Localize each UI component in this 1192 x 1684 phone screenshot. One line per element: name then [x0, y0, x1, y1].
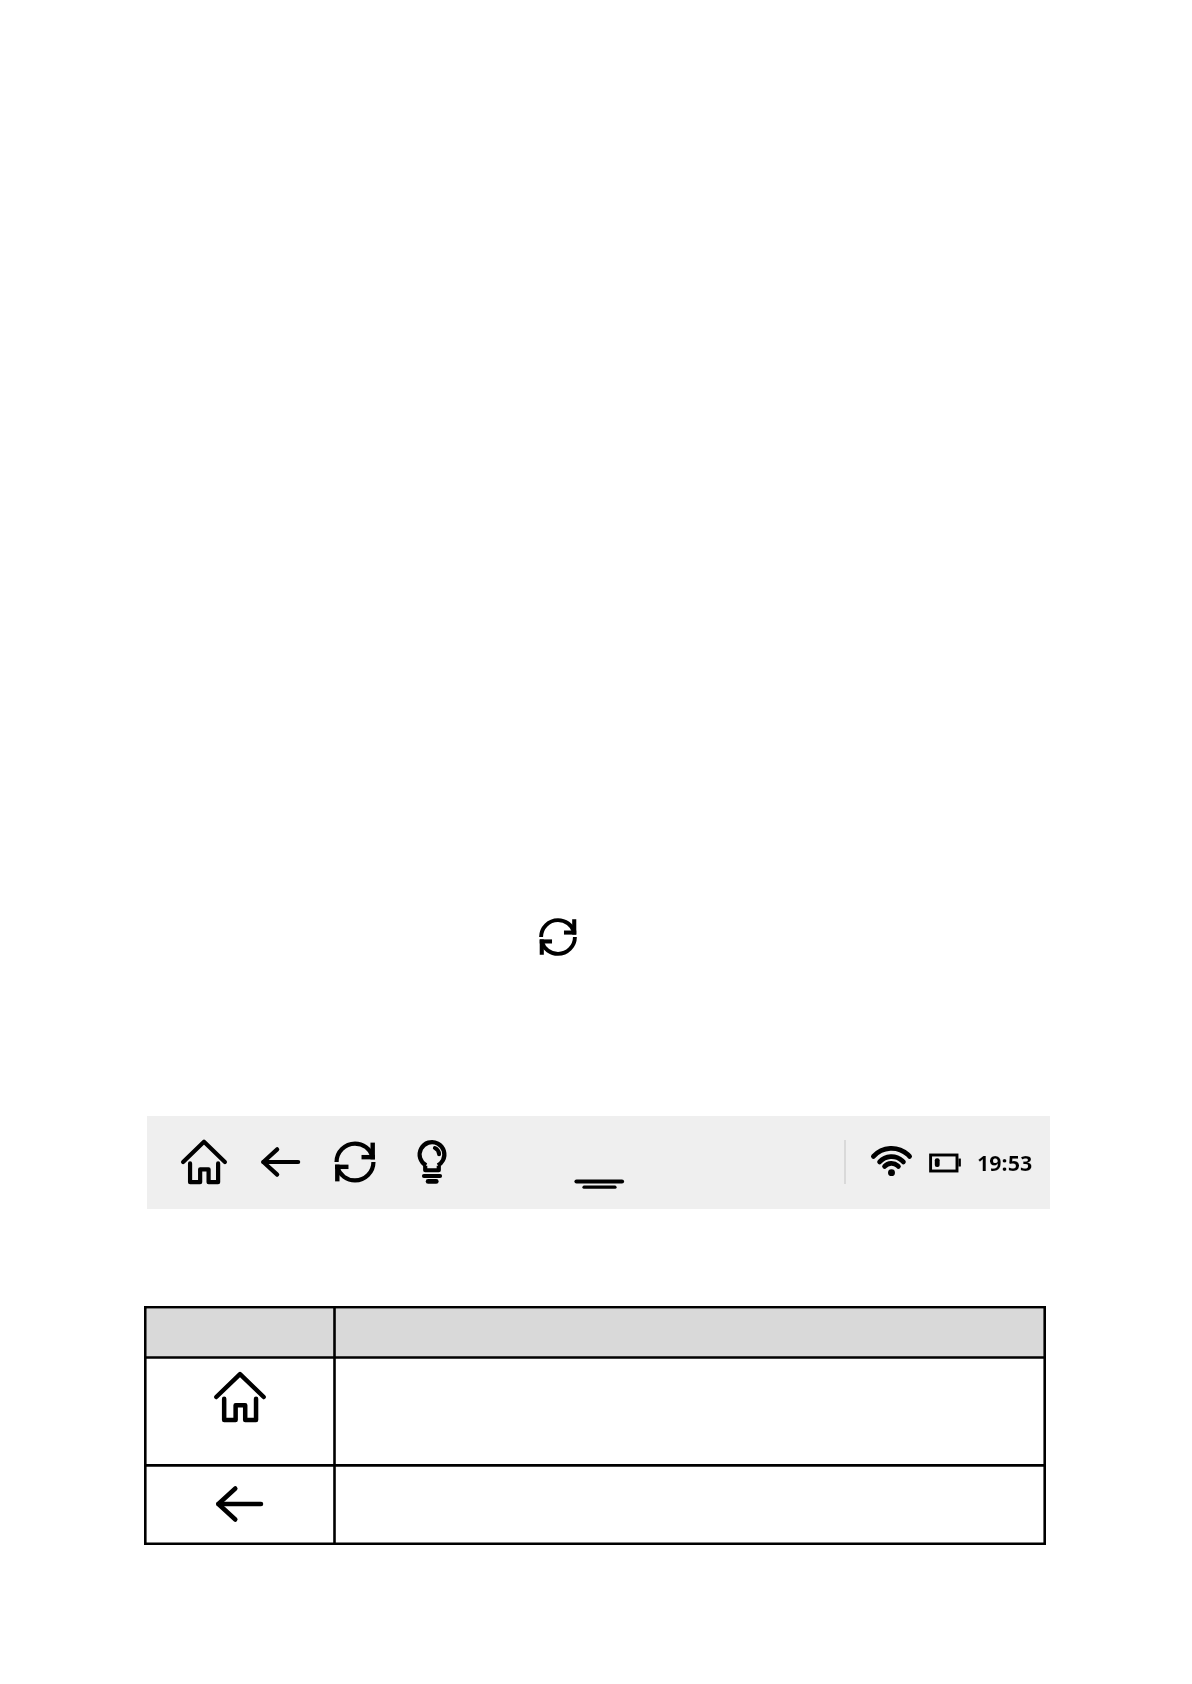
button[interactable]: Tips — [404, 1134, 460, 1190]
button[interactable]: Home — [209, 1366, 271, 1428]
staticText: 19:53 — [977, 1148, 1033, 1177]
button[interactable]: Back — [253, 1134, 309, 1190]
button[interactable]: Home — [176, 1134, 232, 1190]
button[interactable]: Refresh — [327, 1134, 383, 1190]
button[interactable]: Refresh — [534, 913, 582, 961]
button[interactable]: Back — [209, 1473, 271, 1535]
